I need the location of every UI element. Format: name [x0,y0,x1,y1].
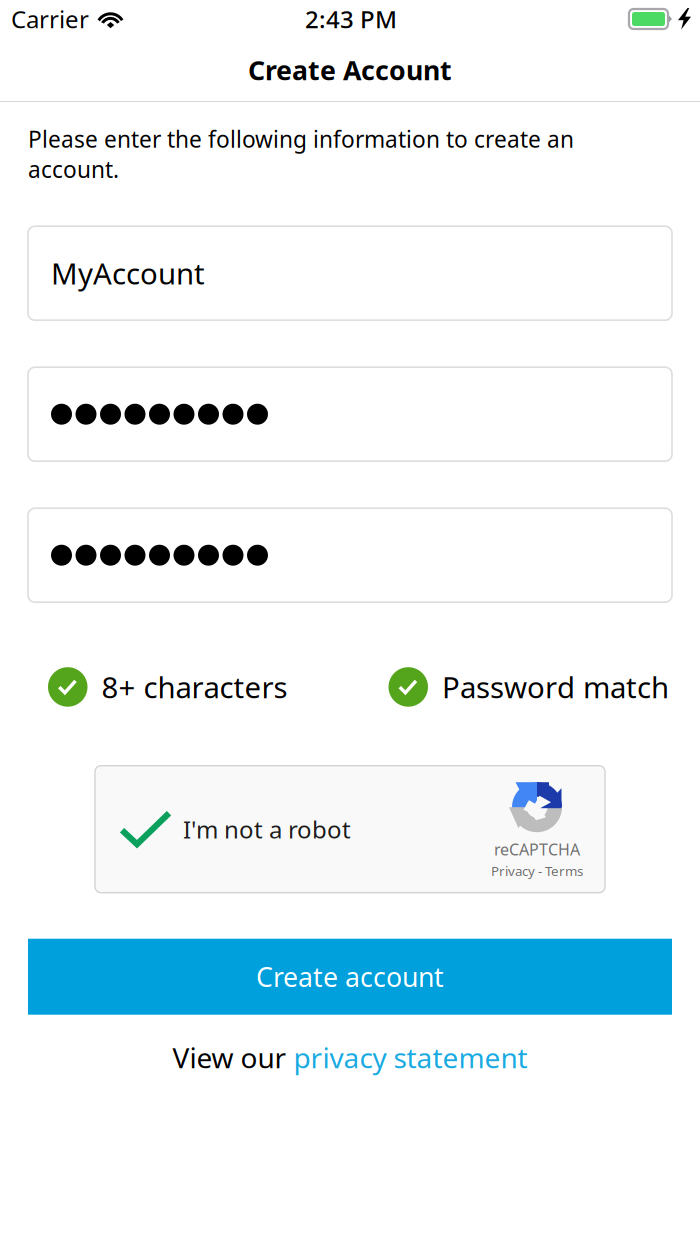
button[interactable]: Create account [28,939,672,1015]
staticText: Password match [442,667,669,706]
staticText: Create account [256,959,444,994]
staticText: View our [172,1039,293,1076]
staticText: I'm not a robot [183,813,351,845]
staticText: Please enter the following information t… [28,124,574,184]
staticText: 2:43 PM [305,3,397,35]
button[interactable]: privacy statement [293,1039,527,1076]
button[interactable]: I'm not a robot [95,766,605,893]
staticText: 8+ characters [101,667,287,706]
staticText: Carrier [11,3,89,35]
staticText: MyAccount [51,254,205,293]
staticText: privacy statement [293,1039,527,1076]
staticText: reCAPTCHA [494,839,580,860]
staticText: Privacy - Terms [491,862,583,880]
staticText: Create Account [248,52,452,88]
